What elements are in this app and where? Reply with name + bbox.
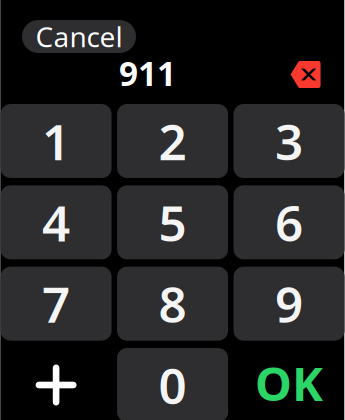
button[interactable]: 4 bbox=[1, 185, 112, 259]
button[interactable]: 7 bbox=[1, 267, 112, 341]
button[interactable]: 6 bbox=[234, 185, 345, 259]
button[interactable]: OK bbox=[234, 348, 345, 420]
staticText: 8 bbox=[159, 271, 187, 336]
button[interactable]: 0 bbox=[117, 348, 228, 420]
staticText: 4 bbox=[42, 190, 70, 255]
staticText: Cancel bbox=[35, 18, 122, 55]
button[interactable]: 5 bbox=[117, 185, 228, 259]
staticText: 6 bbox=[275, 190, 303, 255]
staticText: 7 bbox=[42, 271, 70, 336]
button[interactable]: 1 bbox=[1, 104, 112, 178]
button[interactable]: Cancel bbox=[22, 20, 136, 53]
button[interactable]: Delete bbox=[291, 61, 321, 88]
staticText: OK bbox=[255, 352, 323, 414]
staticText: 1 bbox=[42, 108, 70, 174]
button[interactable]: Plus bbox=[1, 348, 112, 420]
button[interactable]: 2 bbox=[117, 104, 228, 178]
button[interactable]: 3 bbox=[234, 104, 345, 178]
staticText: 3 bbox=[275, 108, 303, 174]
staticText: 2 bbox=[159, 108, 187, 174]
staticText: 0 bbox=[159, 352, 187, 418]
staticText: 5 bbox=[159, 190, 187, 255]
button[interactable]: 9 bbox=[234, 267, 345, 341]
button[interactable]: 8 bbox=[117, 267, 228, 341]
staticText: 9 bbox=[275, 271, 303, 336]
staticText: 911 bbox=[119, 51, 176, 95]
